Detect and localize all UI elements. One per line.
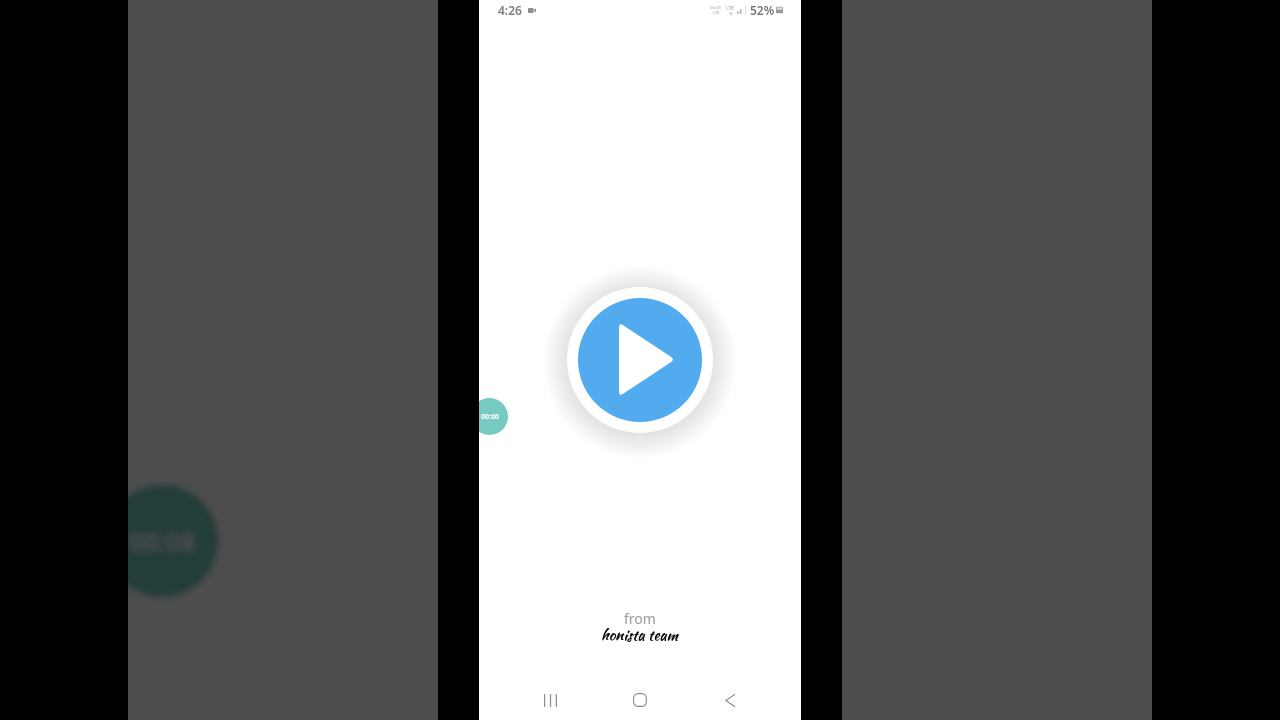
button[interactable]: Recent apps	[529, 683, 571, 717]
staticText: from	[624, 609, 656, 628]
button[interactable]: Home	[619, 683, 661, 717]
button[interactable]: 00:00	[479, 398, 508, 435]
staticText: LTE	[726, 5, 735, 12]
staticText: LTE	[713, 10, 720, 15]
staticText: 4:26	[498, 2, 522, 18]
staticText: 52%	[750, 2, 775, 18]
staticText: 00:08	[129, 524, 196, 559]
staticText: honista team	[601, 624, 678, 646]
button[interactable]: Back	[709, 683, 751, 717]
staticText: VoLTE	[710, 5, 722, 10]
staticText: honista team	[601, 624, 678, 646]
button[interactable]: Play	[550, 270, 730, 450]
staticText: 00:00	[481, 412, 499, 422]
